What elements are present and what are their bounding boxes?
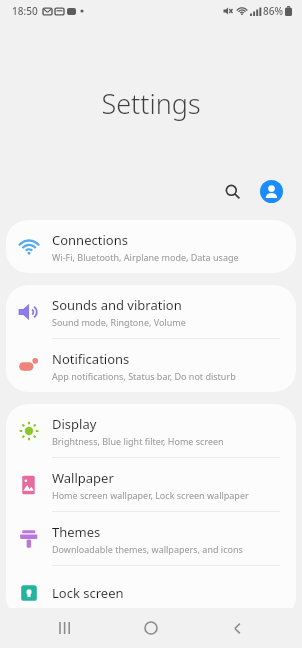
button[interactable]: Search: [215, 174, 249, 208]
staticText: Wallpaper: [52, 469, 114, 487]
staticText: Sound mode, Ringtone, Volume: [52, 316, 186, 328]
button[interactable]: Wallpaper: [6, 458, 296, 511]
button[interactable]: Display: [6, 404, 296, 457]
staticText: App notifications, Status bar, Do not di…: [52, 370, 236, 382]
staticText: Themes: [52, 523, 101, 541]
staticText: Wi-Fi, Bluetooth, Airplane mode, Data us…: [52, 251, 239, 263]
staticText: Home screen wallpaper, Lock screen wallp…: [52, 489, 249, 501]
staticText: 86%: [263, 4, 283, 18]
button[interactable]: Home: [130, 608, 172, 648]
button[interactable]: Recents: [44, 608, 86, 648]
staticText: Brightness, Blue light filter, Home scre…: [52, 435, 224, 447]
staticText: Connections: [52, 231, 128, 249]
staticText: Sounds and vibration: [52, 296, 182, 314]
button[interactable]: Notifications: [6, 339, 296, 392]
button[interactable]: Sounds and vibration: [6, 285, 296, 338]
button[interactable]: Themes: [6, 512, 296, 565]
staticText: 18:50: [12, 4, 38, 18]
staticText: Downloadable themes, wallpapers, and ico…: [52, 543, 243, 555]
staticText: Notifications: [52, 350, 130, 368]
button[interactable]: Lock screen: [6, 566, 296, 619]
staticText: Display: [52, 415, 97, 433]
button[interactable]: Connections: [6, 220, 296, 273]
button[interactable]: Back: [216, 608, 258, 648]
staticText: Settings: [0, 85, 302, 122]
button[interactable]: Account: [254, 174, 288, 208]
staticText: Lock screen: [52, 584, 124, 602]
